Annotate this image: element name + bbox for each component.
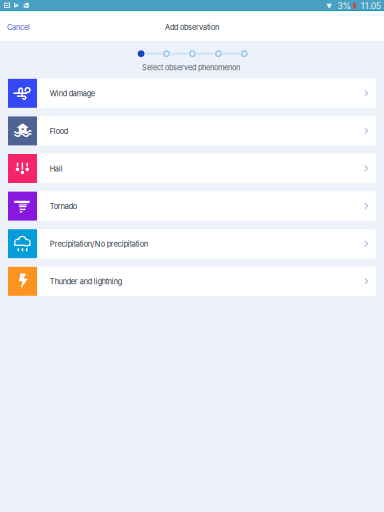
staticText: 3% <box>337 1 351 11</box>
staticText: Hail <box>50 164 63 173</box>
button[interactable]: Tornado <box>8 191 376 221</box>
button[interactable]: Thunder and lightning <box>8 266 376 296</box>
staticText: Wind damage <box>50 89 95 98</box>
button[interactable]: Flood <box>8 116 376 146</box>
staticText: Tornado <box>50 202 77 211</box>
button[interactable]: Hail <box>8 154 376 183</box>
staticText: Precipitation/No precipitation <box>50 240 148 248</box>
staticText: Select observed phenomenon <box>142 63 240 72</box>
staticText: 11.05 <box>361 1 381 11</box>
staticText: Add observation <box>165 23 219 32</box>
staticText: Cancel <box>7 23 30 32</box>
button[interactable]: Precipitation/No precipitation <box>8 229 376 258</box>
staticText: Flood <box>50 127 68 136</box>
button[interactable]: Wind damage <box>8 78 376 108</box>
staticText: Thunder and lightning <box>50 277 122 286</box>
button[interactable]: Cancel <box>0 11 37 41</box>
